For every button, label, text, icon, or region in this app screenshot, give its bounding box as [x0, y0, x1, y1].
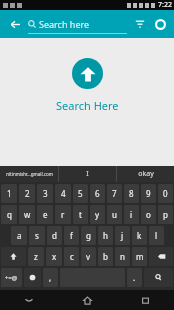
staticText: .: [133, 272, 136, 283]
button[interactable]: d: [47, 226, 62, 245]
button[interactable]: 7: [107, 184, 122, 203]
staticText: t: [79, 209, 82, 220]
button[interactable]: h: [98, 226, 113, 245]
staticText: nitinmishr...gmail.com: [6, 171, 53, 177]
button[interactable]: f: [64, 226, 79, 245]
button[interactable]: a: [11, 226, 27, 245]
staticText: 1: [7, 188, 12, 199]
staticText: a: [17, 230, 22, 241]
staticText: v: [86, 251, 91, 262]
button[interactable]: Back: [0, 290, 58, 310]
button[interactable]: n: [115, 247, 130, 266]
staticText: 0: [163, 188, 168, 199]
button[interactable]: y: [90, 205, 105, 224]
button[interactable]: nitinmishr...gmail.com: [0, 166, 58, 182]
button[interactable]: 4: [55, 184, 71, 203]
button[interactable]: x: [46, 247, 62, 266]
staticText: c: [70, 251, 74, 262]
staticText: okay: [138, 169, 154, 179]
staticText: o: [146, 209, 151, 220]
button[interactable]: Filter: [131, 15, 149, 33]
button[interactable]: k: [132, 226, 147, 245]
button[interactable]: Back: [5, 14, 25, 34]
staticText: g: [86, 230, 91, 241]
button[interactable]: j: [115, 226, 130, 245]
button[interactable]: Recents: [116, 290, 174, 310]
staticText: b: [103, 251, 108, 262]
staticText: 3: [43, 188, 48, 199]
staticText: 7:22: [158, 0, 172, 10]
button[interactable]: t: [73, 205, 88, 224]
button[interactable]: Help: [151, 15, 169, 33]
button[interactable]: z: [28, 247, 44, 266]
staticText: k: [137, 230, 142, 241]
staticText: +=@: [5, 274, 18, 282]
staticText: u: [112, 209, 117, 220]
button[interactable]: 8: [124, 184, 139, 203]
button[interactable]: 2: [19, 184, 35, 203]
staticText: 8: [129, 188, 134, 199]
button[interactable]: 3: [37, 184, 53, 203]
staticText: 6: [95, 188, 100, 199]
button[interactable]: u: [107, 205, 122, 224]
button[interactable]: g: [81, 226, 96, 245]
button[interactable]: .: [127, 268, 142, 287]
staticText: 4: [61, 188, 66, 199]
button[interactable]: o: [141, 205, 156, 224]
button[interactable]: I: [59, 166, 116, 182]
button[interactable]: v: [81, 247, 96, 266]
staticText: p: [163, 209, 168, 220]
button[interactable]: r: [55, 205, 71, 224]
staticText: j: [121, 230, 124, 241]
button[interactable]: ,: [43, 268, 58, 287]
button[interactable]: p: [158, 205, 173, 224]
button[interactable]: c: [64, 247, 79, 266]
button[interactable]: Shift: [1, 247, 26, 266]
button[interactable]: m: [132, 247, 147, 266]
button[interactable]: Backspace: [149, 247, 173, 266]
button[interactable]: b: [98, 247, 113, 266]
staticText: ,: [49, 272, 52, 283]
staticText: 9: [146, 188, 151, 199]
staticText: w: [24, 209, 31, 220]
button[interactable]: 0: [158, 184, 173, 203]
button[interactable]: +=@: [1, 268, 22, 287]
button[interactable]: q: [1, 205, 17, 224]
staticText: Search Here: [56, 98, 119, 113]
button[interactable]: 5: [73, 184, 88, 203]
button[interactable]: Search: [144, 268, 173, 287]
staticText: x: [52, 251, 57, 262]
button[interactable]: 9: [141, 184, 156, 203]
button[interactable]: s: [29, 226, 45, 245]
button[interactable]: Home: [58, 290, 116, 310]
staticText: d: [52, 230, 57, 241]
button[interactable]: w: [19, 205, 35, 224]
button[interactable]: i: [124, 205, 139, 224]
staticText: y: [95, 209, 100, 220]
staticText: 7: [112, 188, 117, 199]
staticText: 5: [78, 188, 83, 199]
staticText: h: [103, 230, 108, 241]
staticText: e: [43, 209, 48, 220]
staticText: I: [86, 169, 89, 179]
button[interactable]: l: [149, 226, 164, 245]
staticText: q: [7, 209, 12, 220]
staticText: s: [35, 230, 39, 241]
staticText: 2: [25, 188, 30, 199]
button[interactable]: Search Here: [72, 58, 103, 89]
staticText: Search here: [39, 18, 90, 30]
button[interactable]: 6: [90, 184, 105, 203]
button[interactable]: Search here: [28, 14, 127, 34]
staticText: r: [61, 209, 65, 220]
staticText: z: [34, 251, 38, 262]
staticText: f: [70, 230, 73, 241]
staticText: i: [130, 209, 133, 220]
button[interactable]: okay: [117, 166, 174, 182]
button[interactable]: e: [37, 205, 53, 224]
button[interactable]: Voice input: [24, 268, 41, 287]
staticText: n: [120, 251, 125, 262]
button[interactable]: 1: [1, 184, 17, 203]
staticText: m: [136, 251, 144, 262]
staticText: l: [155, 230, 158, 241]
